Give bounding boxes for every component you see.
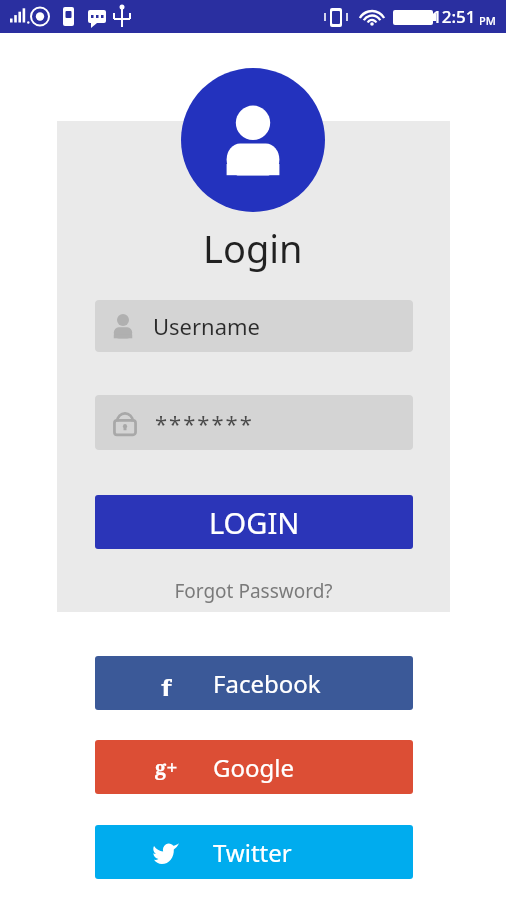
staticText: PM [479,13,496,28]
staticText: 12:51 [432,5,476,28]
staticText: Login [203,222,303,274]
staticText: f [161,670,172,696]
button[interactable]: f [95,656,413,710]
button[interactable]: g+ [95,740,413,794]
button[interactable]: LOGIN [95,495,413,549]
staticText: Forgot Password? [174,578,333,604]
staticText: Twitter [213,836,292,869]
staticText: Username [153,311,261,341]
staticText: ******* [155,408,254,438]
staticText: LOGIN [209,503,300,542]
staticText: Google [213,751,294,784]
button[interactable]: ******* [95,395,413,450]
button[interactable]: Twitter [95,825,413,879]
staticText: g+ [155,754,178,780]
button[interactable]: Forgot Password? [168,572,339,610]
button[interactable]: Username [95,300,413,352]
staticText: Facebook [213,667,321,700]
